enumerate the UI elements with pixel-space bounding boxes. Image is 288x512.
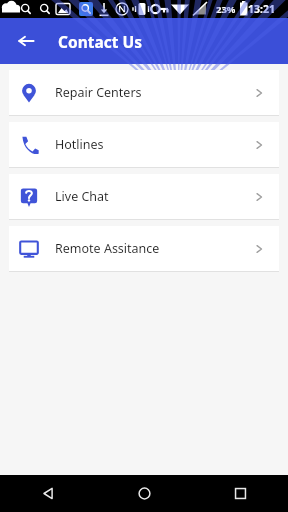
staticText: Hotlines	[55, 136, 104, 153]
staticText: Live Chat	[55, 188, 109, 205]
button[interactable]: Live Chat	[9, 174, 279, 219]
button[interactable]: Repair Centers	[9, 70, 279, 115]
button[interactable]: Hotlines	[9, 122, 279, 167]
button[interactable]: Home	[96, 475, 192, 512]
staticText: 23%	[216, 3, 236, 16]
staticText: Repair Centers	[55, 84, 142, 101]
staticText: 13:21	[248, 2, 275, 16]
staticText: Remote Assitance	[55, 240, 160, 257]
staticText: Contact Us	[58, 31, 142, 52]
button[interactable]: Recents	[192, 475, 288, 512]
button[interactable]: Back	[0, 475, 96, 512]
button[interactable]: Remote Assitance	[9, 226, 279, 271]
button[interactable]: Back	[8, 23, 44, 59]
